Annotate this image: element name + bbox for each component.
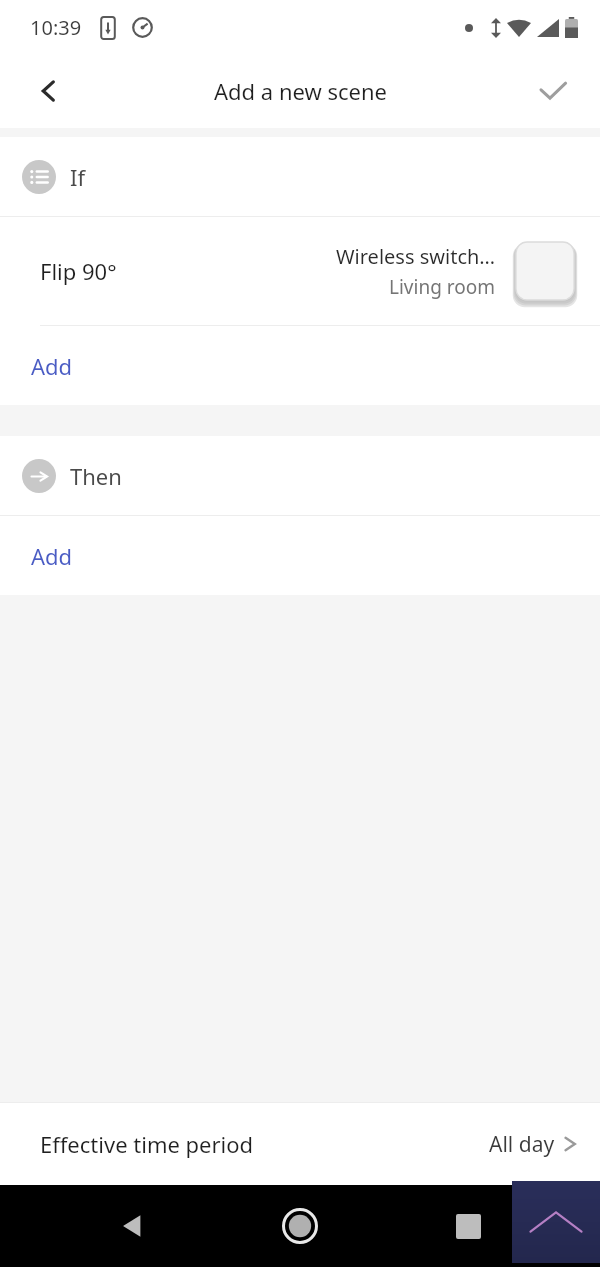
staticText: Living room	[389, 274, 496, 300]
button[interactable]: Flip 90°	[0, 217, 600, 325]
button[interactable]: Confirm	[526, 64, 580, 118]
staticText: 10:39	[30, 14, 82, 41]
staticText: Flip 90°	[40, 256, 117, 286]
staticText: All day	[489, 1130, 555, 1159]
button[interactable]: Back	[96, 1190, 168, 1262]
button[interactable]: Home	[264, 1190, 336, 1262]
staticText: Add	[31, 541, 73, 571]
staticText: Then	[70, 461, 122, 491]
button[interactable]: Expand panel	[512, 1181, 600, 1263]
button[interactable]: Add	[0, 326, 600, 405]
button[interactable]: Back	[22, 64, 76, 118]
button[interactable]: Effective time period	[0, 1103, 600, 1185]
button[interactable]: Then	[0, 436, 600, 515]
button[interactable]: Recent apps	[432, 1190, 504, 1262]
button[interactable]: If	[0, 137, 600, 216]
staticText: Add a new scene	[214, 76, 387, 106]
staticText: Effective time period	[40, 1129, 254, 1159]
staticText: Add	[31, 351, 73, 381]
button[interactable]: Add	[0, 516, 600, 595]
staticText: Wireless switch…	[336, 243, 496, 270]
staticText: If	[70, 162, 86, 192]
